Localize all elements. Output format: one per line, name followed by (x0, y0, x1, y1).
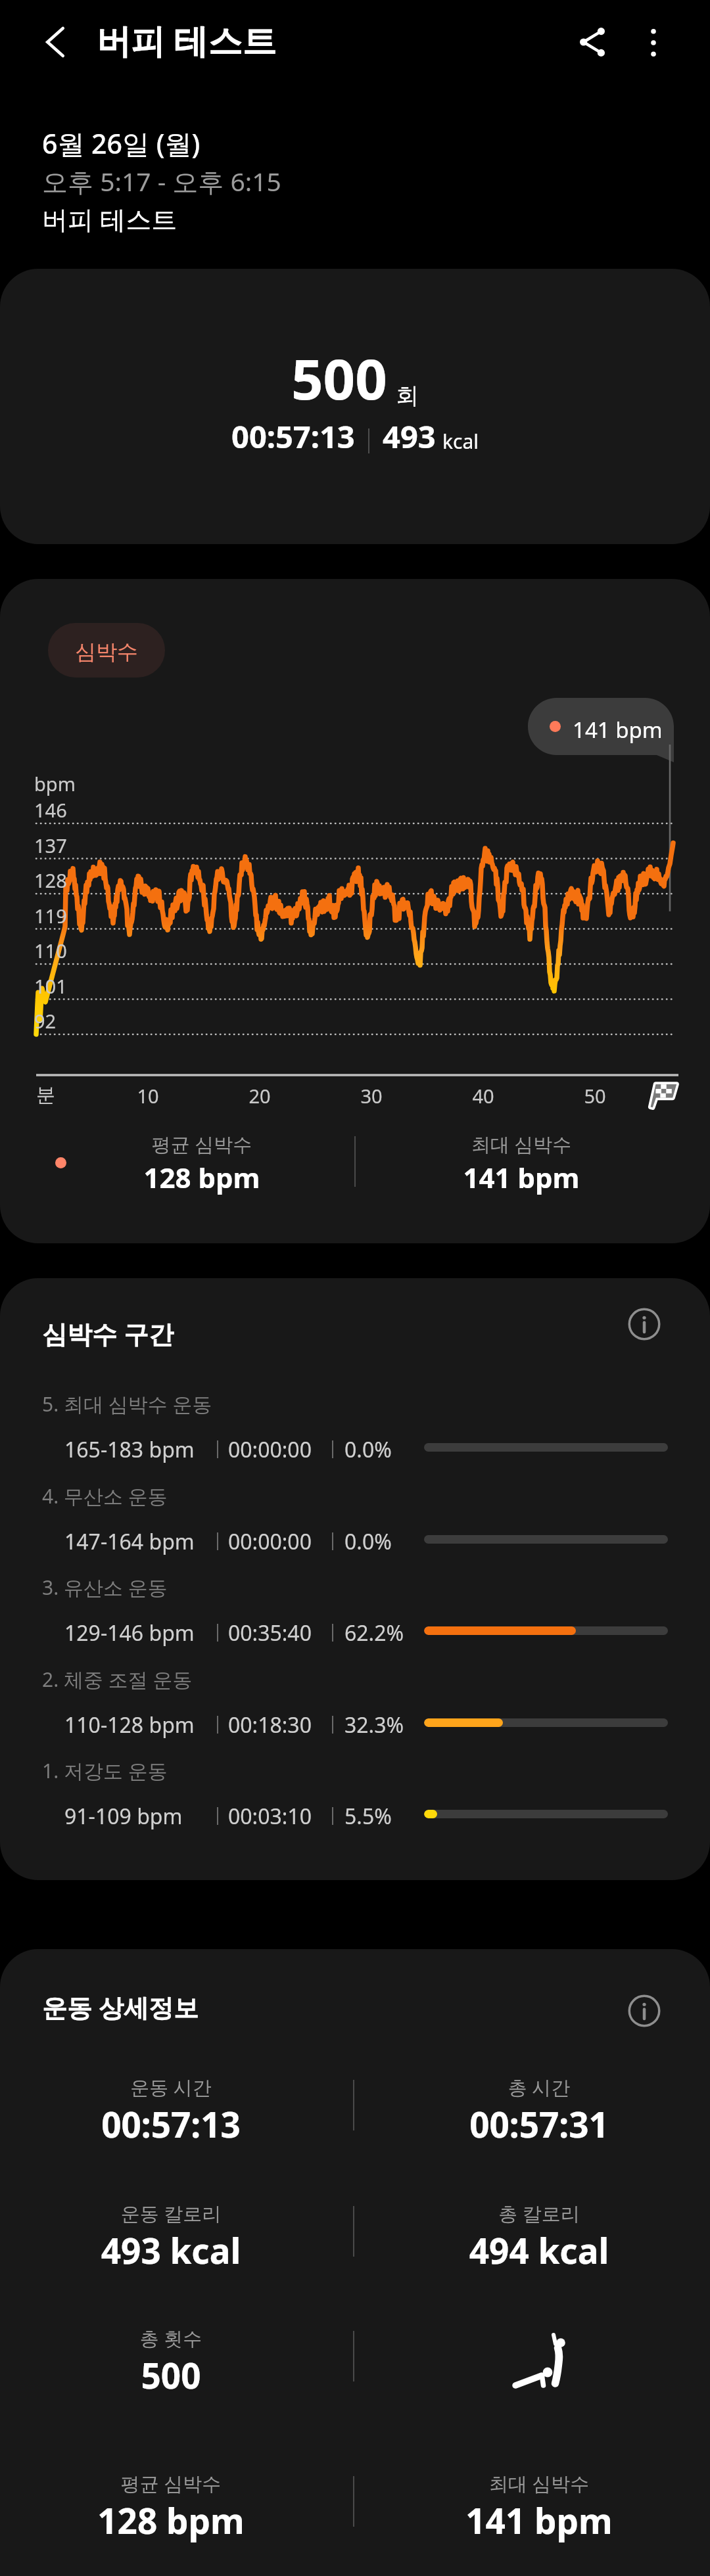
staticText: 0.0% (344, 1527, 392, 1556)
staticText: 62.2% (344, 1619, 404, 1647)
staticText: 최대 심박수 (408, 2470, 671, 2496)
staticText: 00:03:10 (228, 1802, 312, 1831)
staticText: 147-164 bpm (64, 1527, 195, 1556)
button[interactable]: Share (563, 12, 622, 72)
staticText: 110 (34, 938, 67, 963)
staticText: 총 횟수 (39, 2325, 302, 2351)
staticText: 119 (34, 903, 67, 929)
staticText: 6월 26일 (월) (42, 125, 201, 162)
staticText: 32.3% (344, 1711, 404, 1739)
staticText: 00:35:40 (228, 1619, 312, 1647)
button[interactable]: Back (26, 12, 85, 72)
staticText: 137 (34, 833, 67, 858)
staticText: 3. 유산소 운동 (42, 1574, 168, 1601)
staticText: 심박수 (75, 639, 138, 665)
button[interactable]: 심박수 (48, 623, 165, 678)
staticText: 4. 무산소 운동 (42, 1483, 168, 1509)
staticText: 129-146 bpm (64, 1619, 195, 1647)
button[interactable]: More options (624, 13, 683, 72)
staticText: 1. 저강도 운동 (42, 1757, 168, 1784)
staticText: 버피 테스트 (42, 201, 177, 236)
staticText: 오후 5:17 - 오후 6:15 (42, 164, 281, 198)
staticText: 심박수 구간 (42, 1316, 174, 1350)
staticText: 운동 상세정보 (42, 1990, 199, 2024)
staticText: 141 bpm (573, 715, 663, 745)
staticText: 500 (39, 2351, 302, 2399)
staticText: 5. 최대 심박수 운동 (42, 1391, 212, 1417)
staticText: 0.0% (344, 1435, 392, 1464)
staticText: 110-128 bpm (64, 1711, 195, 1739)
staticText: 평균 심박수 (103, 1131, 300, 1157)
staticText: 20 (233, 1083, 286, 1109)
staticText: 00:57:13 (231, 415, 355, 457)
staticText: 141 bpm (408, 2496, 671, 2544)
staticText: 493 kcal (39, 2226, 302, 2274)
staticText: 30 (345, 1083, 398, 1109)
staticText: 분 (36, 1083, 55, 1107)
staticText: 00:57:13 (39, 2100, 302, 2148)
staticText: 00:00:00 (228, 1435, 312, 1464)
staticText: 00:57:31 (408, 2100, 671, 2148)
staticText: 50 (569, 1083, 621, 1109)
staticText: 최대 심박수 (423, 1131, 620, 1157)
staticText: 5.5% (344, 1802, 392, 1831)
staticText: 493 (383, 415, 436, 457)
button[interactable]: 500 (0, 269, 710, 544)
staticText: 101 (34, 973, 67, 999)
staticText: 00:00:00 (228, 1527, 312, 1556)
staticText: 10 (122, 1083, 174, 1109)
staticText: bpm (34, 771, 76, 796)
staticText: 회 (396, 381, 419, 410)
staticText: 2. 체중 조절 운동 (42, 1666, 193, 1693)
staticText: 00:18:30 (228, 1711, 312, 1739)
button[interactable]: Information (615, 1295, 674, 1354)
button[interactable]: Information (615, 1981, 674, 2040)
staticText: 총 시간 (408, 2074, 671, 2100)
staticText: 128 bpm (39, 2496, 302, 2544)
staticText: 운동 칼로리 (39, 2200, 302, 2226)
staticText: 운동 시간 (39, 2074, 302, 2100)
staticText: 128 (34, 867, 67, 893)
staticText: 91-109 bpm (64, 1802, 183, 1831)
staticText: 146 (34, 797, 67, 823)
staticText: 버피 테스트 (97, 16, 277, 63)
staticText: 494 kcal (408, 2226, 671, 2274)
staticText: 총 칼로리 (408, 2200, 671, 2226)
staticText: 141 bpm (423, 1159, 620, 1196)
staticText: 128 bpm (103, 1159, 300, 1196)
staticText: 500 (291, 340, 387, 416)
staticText: 40 (457, 1083, 509, 1109)
staticText: 평균 심박수 (39, 2470, 302, 2496)
staticText: kcal (442, 428, 479, 455)
staticText: 92 (34, 1008, 57, 1034)
staticText: 165-183 bpm (64, 1435, 195, 1464)
